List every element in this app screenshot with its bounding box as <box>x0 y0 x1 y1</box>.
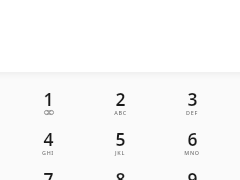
staticText: 8 <box>115 167 126 180</box>
staticText: 9 <box>187 167 198 180</box>
staticText: 3 <box>187 87 198 111</box>
staticText: GHI <box>42 149 54 156</box>
button[interactable]: Dial 6 MNO <box>156 133 228 173</box>
staticText: 6 <box>187 127 198 151</box>
staticText: JKL <box>115 149 125 156</box>
staticText: ABC <box>114 109 127 116</box>
staticText: MNO <box>184 149 200 156</box>
staticText: 1 <box>43 87 54 111</box>
staticText: DEF <box>186 109 198 116</box>
staticText: 5 <box>115 127 126 151</box>
button[interactable]: Dial 4 GHI <box>12 133 84 173</box>
button[interactable]: Dial 8 TUV <box>84 173 156 180</box>
button[interactable]: Dial 2 ABC <box>84 93 156 133</box>
staticText: 4 <box>43 127 54 151</box>
button[interactable]: Dial 9 WXYZ <box>156 173 228 180</box>
staticText: 7 <box>43 167 54 180</box>
button[interactable]: Dial 1, voicemail <box>12 93 84 133</box>
button[interactable]: Dial 3 DEF <box>156 93 228 133</box>
button[interactable]: Dial 7 PQRS <box>12 173 84 180</box>
button[interactable]: Dial 5 JKL <box>84 133 156 173</box>
staticText: 2 <box>115 87 126 111</box>
